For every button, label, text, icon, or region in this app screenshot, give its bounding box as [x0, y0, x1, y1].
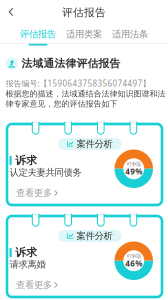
- staticText: 适用类案: [66, 28, 102, 40]
- staticText: 评估报告: [62, 6, 106, 19]
- staticText: 诉求: [15, 154, 37, 167]
- staticText: 认定夫妻共同债务: [9, 167, 81, 178]
- staticText: 可争取: [126, 161, 141, 167]
- staticText: 案件分析: [76, 138, 112, 150]
- staticText: 46%: [125, 258, 142, 269]
- staticText: 适用法条: [112, 28, 148, 40]
- staticText: 报告编号:【1590643758356074497】: [5, 78, 150, 89]
- staticText: 查看更多: [16, 279, 52, 291]
- staticText: 法域通法律评估报告: [21, 57, 120, 70]
- button[interactable]: 适用法条: [107, 30, 153, 44]
- button[interactable]: 适用类案: [61, 30, 107, 44]
- staticText: 案件分析: [76, 230, 112, 242]
- staticText: 查看更多: [16, 187, 52, 199]
- staticText: 49%: [125, 166, 142, 177]
- staticText: 评估报告: [20, 28, 56, 40]
- button[interactable]: 查看更多: [9, 278, 160, 292]
- staticText: 请求离婚: [9, 259, 45, 270]
- button[interactable]: Back: [0, 1, 22, 23]
- staticText: 可争取: [126, 253, 141, 259]
- button[interactable]: 查看更多: [9, 186, 160, 200]
- staticText: 诉求: [15, 246, 37, 259]
- button[interactable]: 评估报告: [15, 30, 61, 44]
- staticText: 根据您的描述，法域通结合法律知识图谱和法律专家意见，您的评估报告如下: [5, 89, 165, 109]
